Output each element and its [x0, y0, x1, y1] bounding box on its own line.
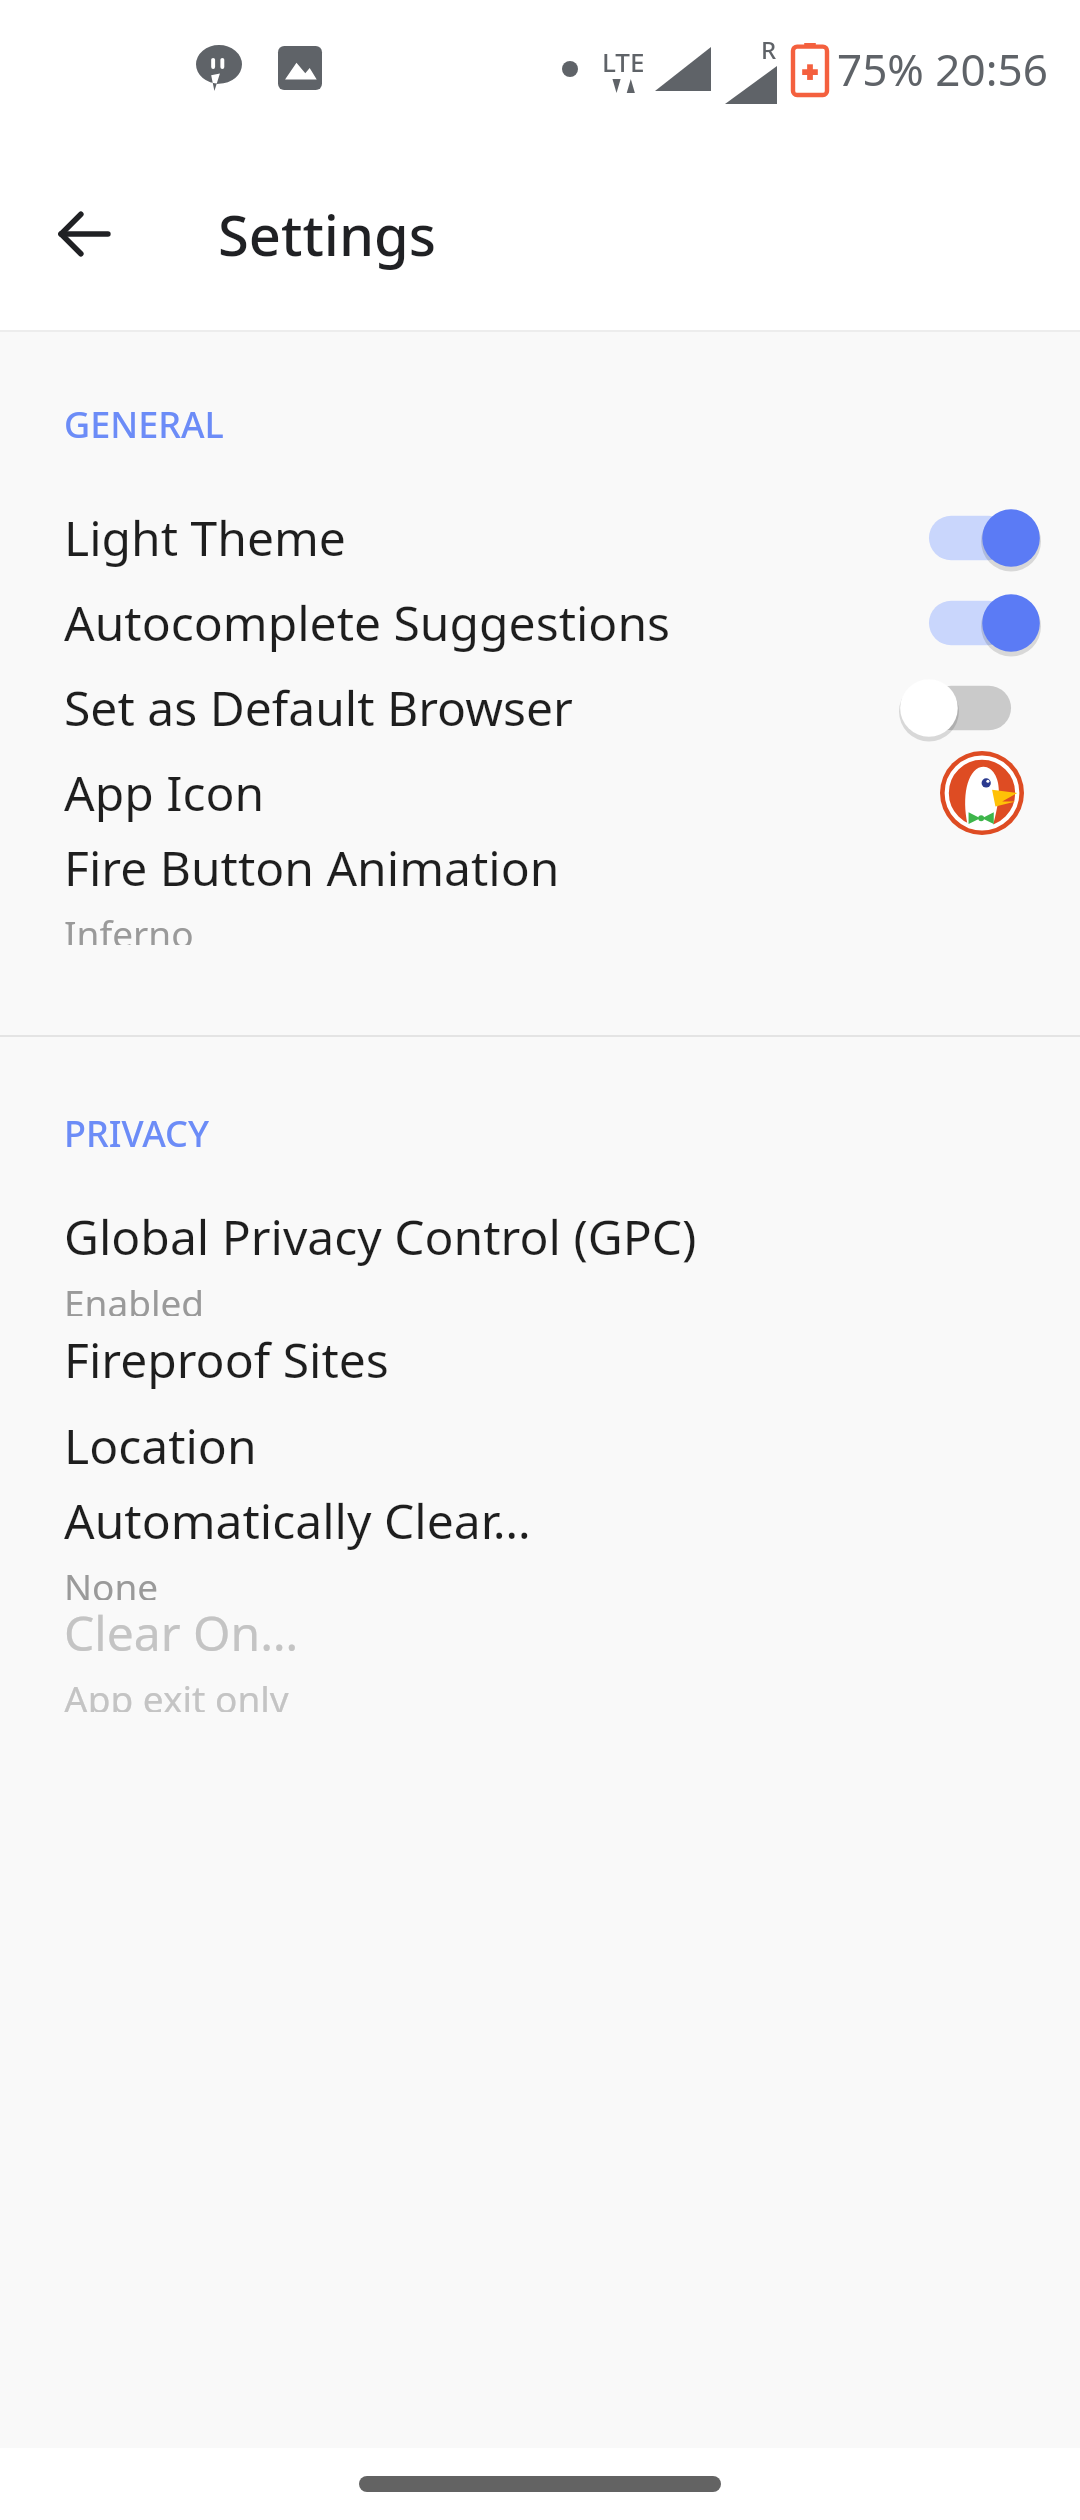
staticText: Automatically Clear…	[64, 1488, 531, 1553]
button[interactable]: App Icon	[940, 751, 1024, 835]
staticText: Location	[64, 1413, 257, 1478]
staticText: App Icon	[64, 760, 265, 825]
staticText: PRIVACY	[64, 1109, 209, 1158]
button[interactable]: Light Theme	[0, 495, 1080, 580]
button[interactable]: Toggle on	[916, 502, 1024, 574]
staticText: 75% 20:56	[837, 39, 1048, 99]
button[interactable]: Automatically Clear…	[0, 1488, 1080, 1600]
staticText: Fireproof Sites	[64, 1327, 389, 1392]
staticText: Settings	[218, 196, 437, 272]
staticText: LTE	[602, 44, 645, 79]
button[interactable]: Autocomplete Suggestions	[0, 580, 1080, 665]
staticText: Set as Default Browser	[64, 675, 573, 740]
staticText: Fire Button Animation	[64, 835, 560, 900]
staticText: Enabled	[64, 1277, 205, 1316]
staticText: Inferno	[64, 908, 194, 945]
button[interactable]: Set as Default Browser	[0, 665, 1080, 750]
staticText: Light Theme	[64, 505, 346, 570]
button[interactable]: Toggle off	[916, 672, 1024, 744]
staticText: Global Privacy Control (GPC)	[64, 1204, 697, 1269]
button[interactable]: App Icon	[0, 750, 1080, 835]
button[interactable]: Fireproof Sites	[0, 1316, 1080, 1402]
button[interactable]: Toggle on	[916, 587, 1024, 659]
staticText: Clear On…	[64, 1600, 299, 1665]
button[interactable]: Clear On…	[0, 1600, 1080, 1712]
button[interactable]: Location	[0, 1402, 1080, 1488]
button[interactable]: Global Privacy Control (GPC)	[0, 1204, 1080, 1316]
staticText: R	[761, 33, 777, 66]
staticText: None	[64, 1561, 159, 1600]
staticText: App exit only	[64, 1673, 289, 1712]
button[interactable]: Back	[36, 186, 132, 282]
staticText: Autocomplete Suggestions	[64, 590, 671, 655]
staticText: GENERAL	[64, 400, 224, 449]
button[interactable]: Fire Button Animation	[0, 835, 1080, 945]
